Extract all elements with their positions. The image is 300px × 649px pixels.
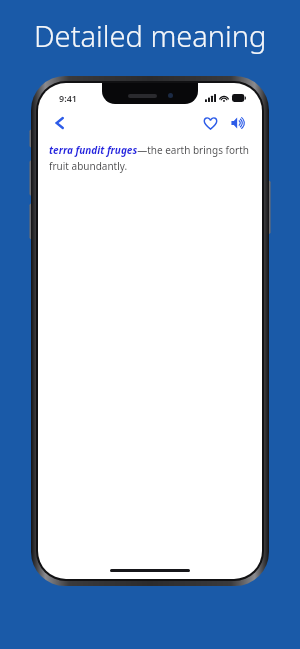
button[interactable]: Favorite — [196, 109, 224, 137]
button[interactable]: Play pronunciation — [224, 109, 252, 137]
button[interactable]: Back — [46, 109, 74, 137]
staticText: Detailed meaning — [34, 16, 267, 55]
staticText: terra fundit fruges—the earth brings for… — [49, 143, 251, 172]
staticText: 9:41 — [59, 92, 77, 104]
